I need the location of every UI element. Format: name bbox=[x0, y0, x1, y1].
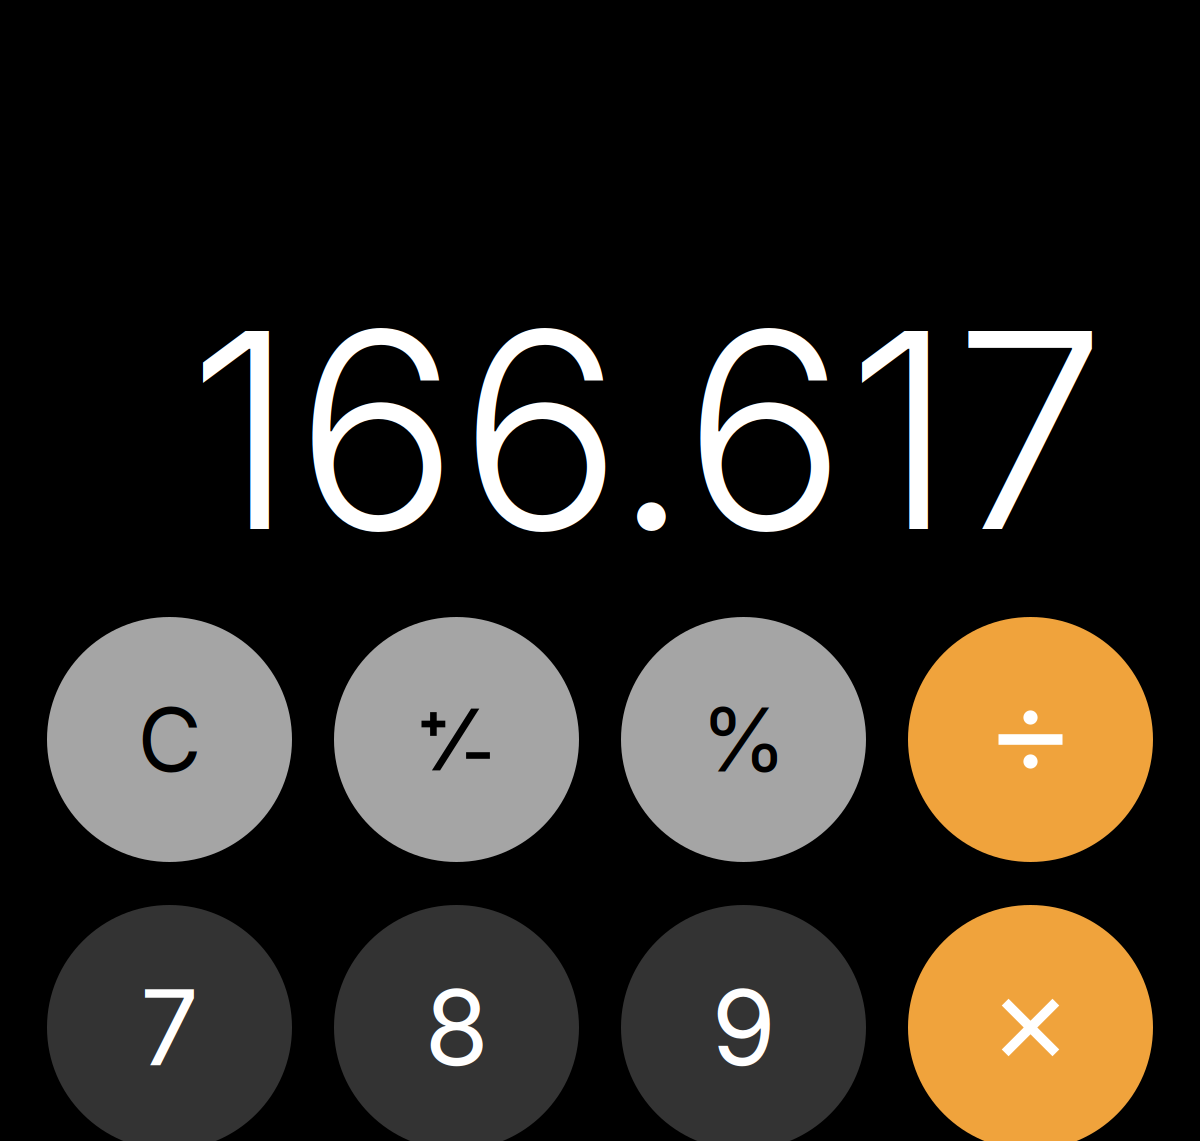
button[interactable]: Divide bbox=[908, 617, 1153, 862]
staticText: 9 bbox=[711, 965, 775, 1090]
staticText: % bbox=[700, 686, 786, 793]
staticText: 7 bbox=[140, 965, 199, 1090]
button[interactable]: Clear bbox=[47, 617, 292, 862]
staticText: 8 bbox=[424, 965, 488, 1090]
staticText: C bbox=[137, 686, 201, 793]
button[interactable]: Plus minus bbox=[334, 617, 579, 862]
button[interactable]: 9 bbox=[621, 905, 866, 1141]
button[interactable]: 8 bbox=[334, 905, 579, 1141]
staticText: 166.617 bbox=[188, 265, 1106, 594]
button[interactable]: Multiply bbox=[908, 905, 1153, 1141]
button[interactable]: 7 bbox=[47, 905, 292, 1141]
button[interactable]: Percent bbox=[621, 617, 866, 862]
